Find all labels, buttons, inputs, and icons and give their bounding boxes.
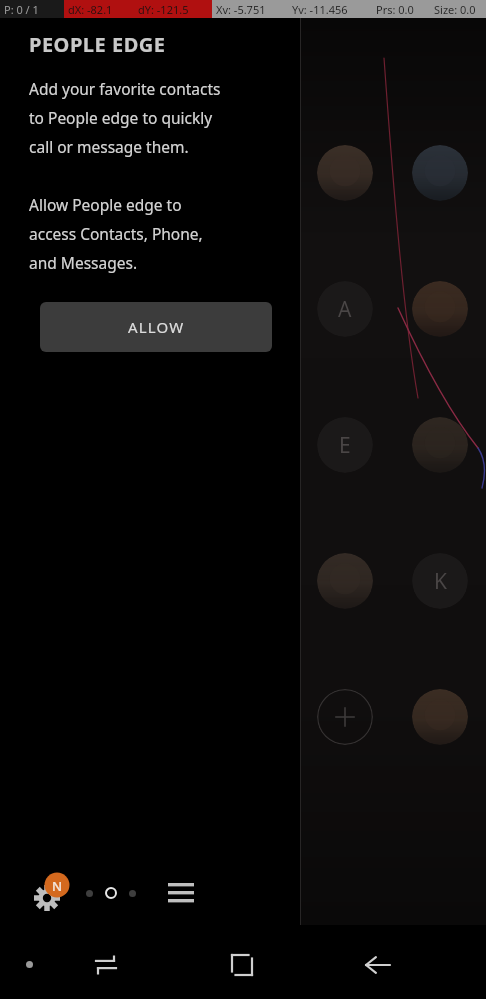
- staticText: and Messages.: [29, 252, 138, 273]
- staticText: to People edge to quickly: [29, 107, 213, 128]
- button[interactable]: ALLOW: [40, 302, 272, 352]
- button[interactable]: Recent apps: [86, 945, 126, 985]
- staticText: PEOPLE EDGE: [29, 31, 166, 58]
- button[interactable]: Contact: [412, 145, 468, 201]
- staticText: Add your favorite contacts: [29, 78, 221, 99]
- button[interactable]: Add contact: [317, 689, 373, 745]
- staticText: E: [339, 431, 351, 460]
- button[interactable]: Contact: [317, 553, 373, 609]
- staticText: N: [52, 877, 63, 895]
- button[interactable]: Back: [358, 945, 398, 985]
- staticText: Prs: 0.0: [376, 2, 414, 17]
- staticText: call or message them.: [29, 136, 189, 157]
- staticText: K: [434, 567, 447, 596]
- button[interactable]: Contact: [317, 145, 373, 201]
- staticText: Allow People edge to: [29, 194, 182, 215]
- button[interactable]: Contact: [412, 553, 468, 609]
- staticText: ALLOW: [128, 317, 185, 337]
- button[interactable]: Contact: [412, 689, 468, 745]
- button[interactable]: Keyboard indicator: [10, 945, 48, 983]
- button[interactable]: Contact: [412, 417, 468, 473]
- button[interactable]: Menu: [164, 876, 198, 910]
- staticText: P: 0 / 1: [4, 2, 39, 17]
- staticText: Size: 0.0: [434, 2, 476, 17]
- staticText: access Contacts, Phone,: [29, 223, 203, 244]
- button[interactable]: Contact: [317, 417, 373, 473]
- staticText: Yv: -11.456: [292, 2, 348, 17]
- button[interactable]: Home: [222, 945, 262, 985]
- staticText: Xv: -5.751: [216, 2, 266, 17]
- button[interactable]: Contact: [317, 281, 373, 337]
- staticText: dX: -82.1: [68, 2, 113, 17]
- button[interactable]: Settings: [30, 872, 76, 918]
- staticText: A: [338, 295, 352, 324]
- staticText: dY: -121.5: [138, 2, 189, 17]
- button[interactable]: Contact: [412, 281, 468, 337]
